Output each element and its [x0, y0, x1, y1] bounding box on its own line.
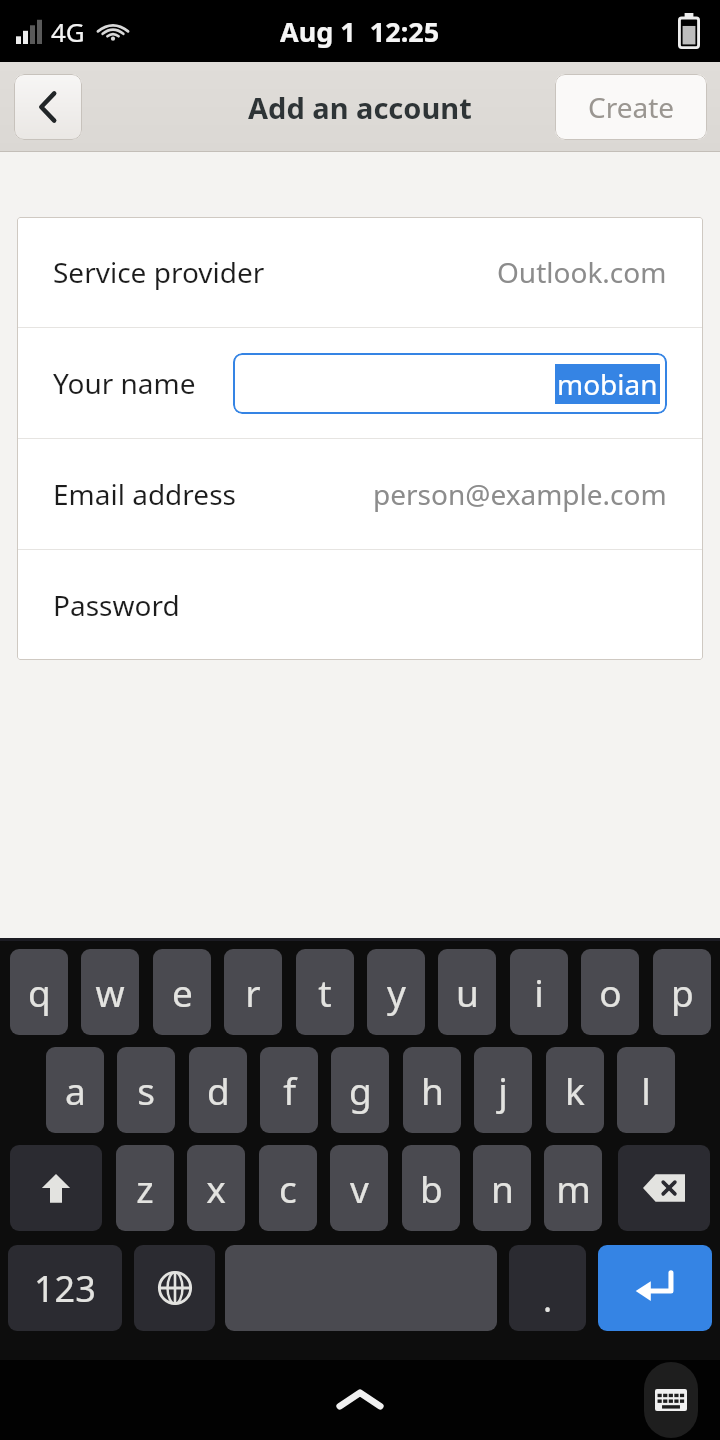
- button[interactable]: Enter: [598, 1245, 712, 1331]
- staticText: 123: [34, 1264, 96, 1313]
- button[interactable]: Service provider: [17, 217, 703, 327]
- button[interactable]: j: [474, 1047, 532, 1133]
- button[interactable]: s: [117, 1047, 175, 1133]
- staticText: f: [283, 1065, 296, 1115]
- button[interactable]: a: [46, 1047, 104, 1133]
- staticText: Email address: [53, 475, 236, 513]
- staticText: person@example.com: [373, 475, 667, 513]
- button[interactable]: Email address: [17, 439, 703, 549]
- staticText: mobian: [557, 365, 658, 403]
- staticText: t: [318, 967, 332, 1017]
- button[interactable]: c: [259, 1145, 317, 1231]
- button[interactable]: Keyboard settings: [644, 1362, 698, 1438]
- button[interactable]: i: [510, 949, 568, 1035]
- staticText: v: [350, 1163, 369, 1213]
- button[interactable]: q: [10, 949, 68, 1035]
- button[interactable]: .: [509, 1245, 586, 1331]
- button[interactable]: u: [438, 949, 496, 1035]
- button[interactable]: Space: [225, 1245, 497, 1331]
- button[interactable]: t: [296, 949, 354, 1035]
- staticText: d: [207, 1065, 230, 1115]
- staticText: q: [28, 967, 51, 1017]
- button[interactable]: v: [330, 1145, 388, 1231]
- staticText: Outlook.com: [497, 253, 667, 291]
- staticText: n: [491, 1163, 514, 1213]
- staticText: Your name: [53, 364, 196, 402]
- button[interactable]: h: [403, 1047, 461, 1133]
- staticText: j: [498, 1065, 508, 1115]
- button[interactable]: Create: [555, 74, 707, 140]
- staticText: Add an account: [248, 88, 472, 127]
- staticText: Create: [588, 88, 675, 126]
- button[interactable]: k: [546, 1047, 604, 1133]
- button[interactable]: r: [224, 949, 282, 1035]
- staticText: s: [137, 1065, 155, 1115]
- button[interactable]: l: [617, 1047, 675, 1133]
- button[interactable]: e: [153, 949, 211, 1035]
- button[interactable]: n: [473, 1145, 531, 1231]
- staticText: r: [245, 967, 261, 1017]
- staticText: h: [421, 1065, 444, 1115]
- button[interactable]: 123: [8, 1245, 122, 1331]
- staticText: z: [136, 1163, 154, 1213]
- button[interactable]: Change keyboard layout: [134, 1245, 215, 1331]
- staticText: b: [420, 1163, 443, 1213]
- button[interactable]: Backspace: [618, 1145, 710, 1231]
- button[interactable]: Back: [14, 74, 82, 140]
- staticText: 4G: [51, 14, 85, 49]
- staticText: Aug 1 12:25: [280, 13, 440, 50]
- button[interactable]: x: [187, 1145, 245, 1231]
- staticText: k: [565, 1065, 585, 1115]
- staticText: x: [206, 1163, 226, 1213]
- button[interactable]: z: [116, 1145, 174, 1231]
- button[interactable]: b: [402, 1145, 460, 1231]
- staticText: Password: [53, 586, 180, 624]
- staticText: a: [65, 1065, 86, 1115]
- staticText: g: [349, 1065, 372, 1115]
- button[interactable]: mobian: [233, 353, 667, 414]
- button[interactable]: g: [331, 1047, 389, 1133]
- staticText: l: [641, 1065, 651, 1115]
- button[interactable]: Password: [17, 550, 703, 660]
- staticText: o: [599, 967, 622, 1017]
- staticText: Service provider: [53, 253, 265, 291]
- staticText: p: [671, 967, 694, 1017]
- staticText: c: [279, 1163, 297, 1213]
- button[interactable]: f: [260, 1047, 318, 1133]
- staticText: e: [172, 967, 193, 1017]
- staticText: w: [95, 967, 125, 1017]
- button[interactable]: m: [544, 1145, 602, 1231]
- staticText: i: [534, 967, 544, 1017]
- staticText: u: [456, 967, 479, 1017]
- button[interactable]: p: [653, 949, 711, 1035]
- staticText: .: [543, 1276, 553, 1322]
- button[interactable]: d: [189, 1047, 247, 1133]
- staticText: y: [387, 967, 406, 1017]
- button[interactable]: Hide keyboard: [300, 1365, 420, 1435]
- button[interactable]: y: [367, 949, 425, 1035]
- button[interactable]: w: [81, 949, 139, 1035]
- button[interactable]: Shift: [10, 1145, 102, 1231]
- button[interactable]: o: [581, 949, 639, 1035]
- staticText: m: [556, 1163, 591, 1213]
